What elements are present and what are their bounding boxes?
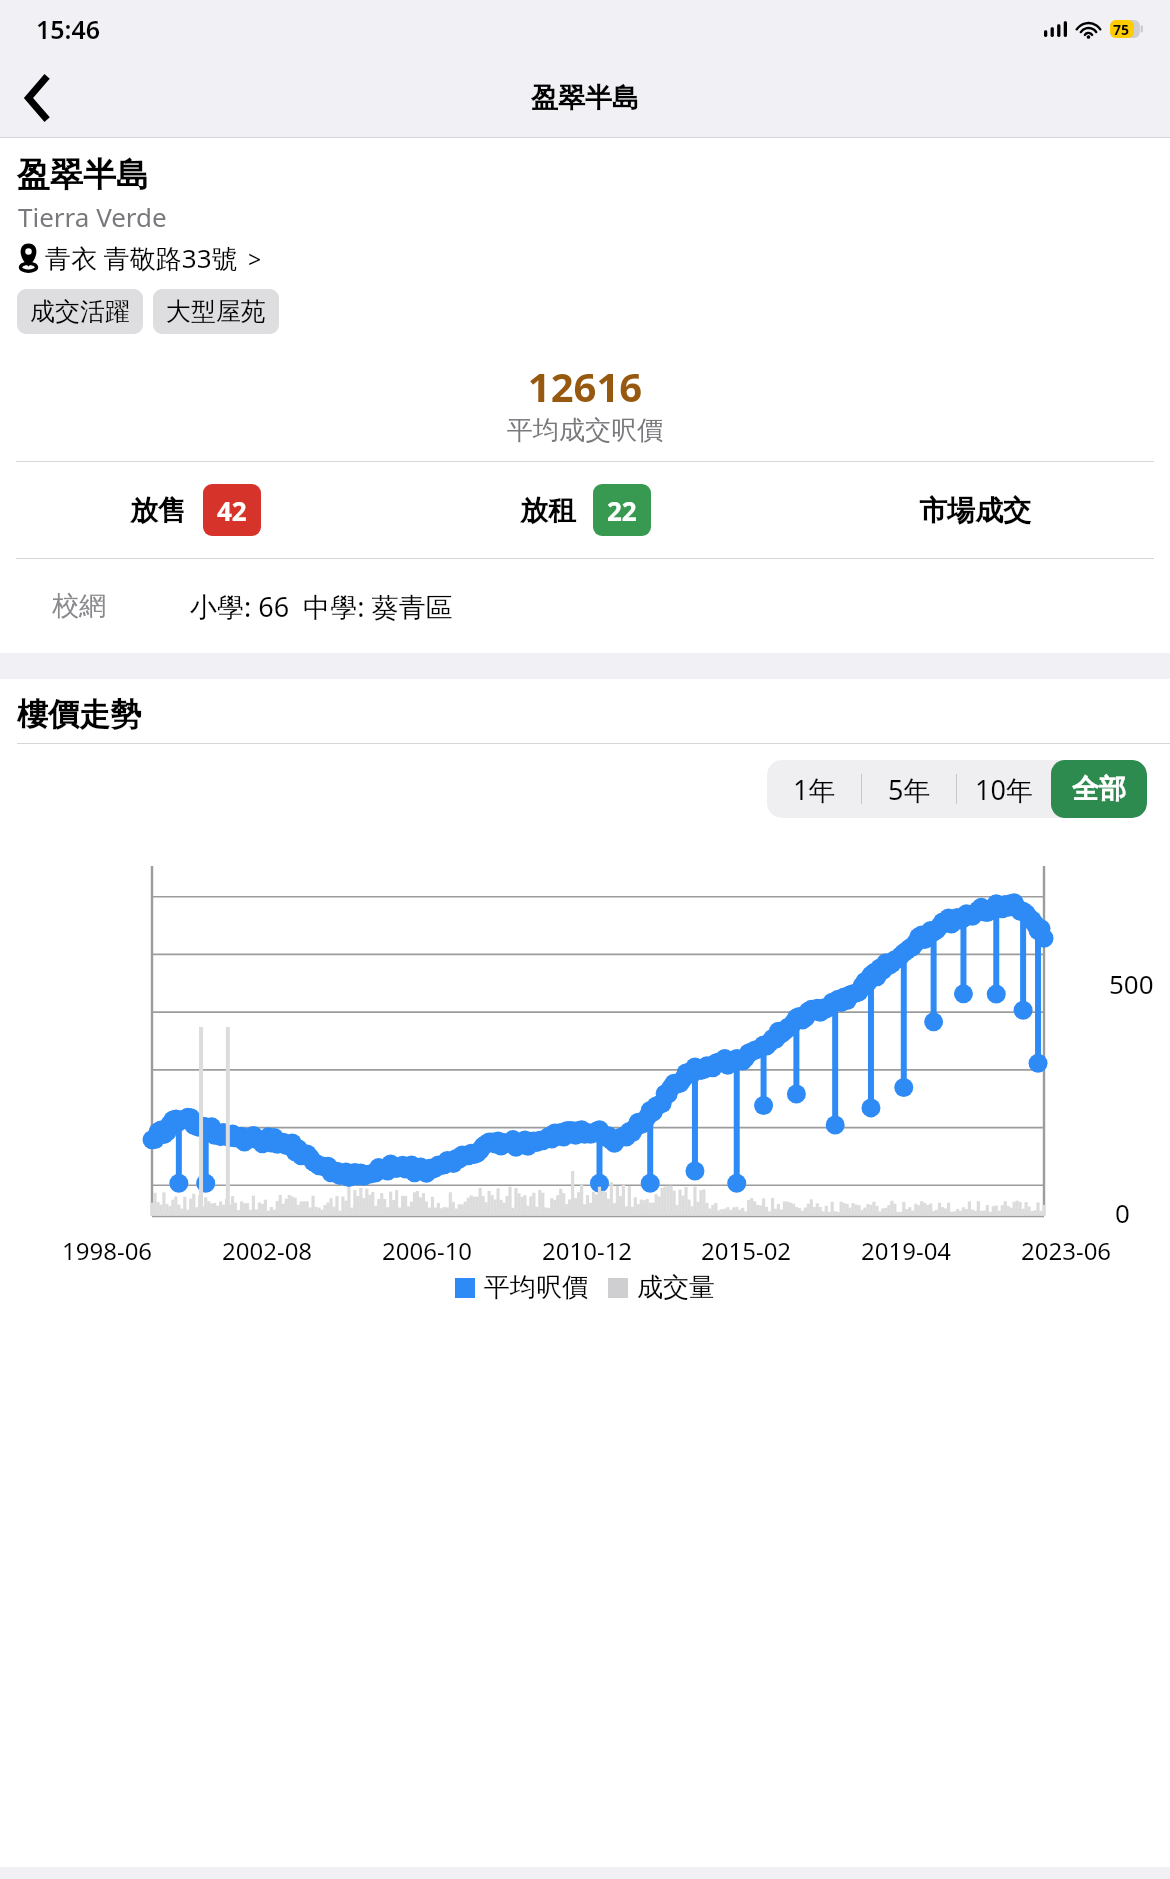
staticText: 大型屋苑	[166, 296, 266, 327]
staticText: 校網	[52, 589, 106, 623]
button[interactable]: 全部	[1051, 760, 1147, 818]
staticText: 2002-08	[222, 1234, 313, 1267]
staticText: 樓價走勢	[17, 695, 141, 734]
staticText: 500	[1109, 966, 1154, 1001]
staticText: 1998-06	[62, 1234, 153, 1267]
staticText: 2019-04	[861, 1234, 952, 1267]
staticText: >	[248, 243, 262, 274]
staticText: 2023-06	[1021, 1234, 1112, 1267]
button[interactable]: 5年	[862, 760, 956, 818]
staticText: 平均呎價	[484, 1271, 588, 1304]
staticText: 5年	[888, 771, 931, 808]
staticText: 12616	[0, 359, 1170, 413]
staticText: 2010-12	[542, 1234, 633, 1267]
staticText: 22	[607, 493, 637, 528]
staticText: 放租	[520, 493, 576, 528]
staticText: 小學: 66 中學: 葵青區	[190, 588, 453, 625]
staticText: 平均成交呎價	[0, 414, 1170, 447]
staticText: 2006-10	[382, 1234, 473, 1267]
staticText: 10年	[975, 771, 1033, 808]
staticText: Tierra Verde	[18, 199, 167, 234]
button[interactable]: 成交活躍	[17, 289, 143, 334]
staticText: 1年	[793, 771, 836, 808]
button[interactable]: 放售	[0, 462, 390, 558]
staticText: 2015-02	[701, 1234, 792, 1267]
staticText: 盈翠半島	[531, 81, 639, 115]
staticText: 42	[217, 493, 247, 528]
button[interactable]: 校網	[0, 559, 1170, 653]
staticText: 成交量	[637, 1271, 715, 1304]
button[interactable]: 放租	[390, 462, 780, 558]
staticText: 放售	[130, 493, 186, 528]
staticText: 75	[1113, 20, 1130, 38]
button[interactable]: 青衣 青敬路33號	[16, 240, 262, 276]
button[interactable]: 市場成交	[780, 462, 1170, 558]
staticText: 15:46	[36, 12, 101, 46]
button[interactable]: Back	[4, 65, 70, 131]
staticText: 市場成交	[919, 493, 1031, 528]
staticText: 盈翠半島	[17, 154, 149, 196]
staticText: 青衣 青敬路33號	[45, 240, 238, 276]
button[interactable]: 1年	[767, 760, 861, 818]
button[interactable]: 10年	[957, 760, 1051, 818]
staticText: 0	[1115, 1195, 1130, 1230]
staticText: 成交活躍	[30, 296, 130, 327]
button[interactable]: 大型屋苑	[153, 289, 279, 334]
staticText: 全部	[1072, 772, 1126, 806]
